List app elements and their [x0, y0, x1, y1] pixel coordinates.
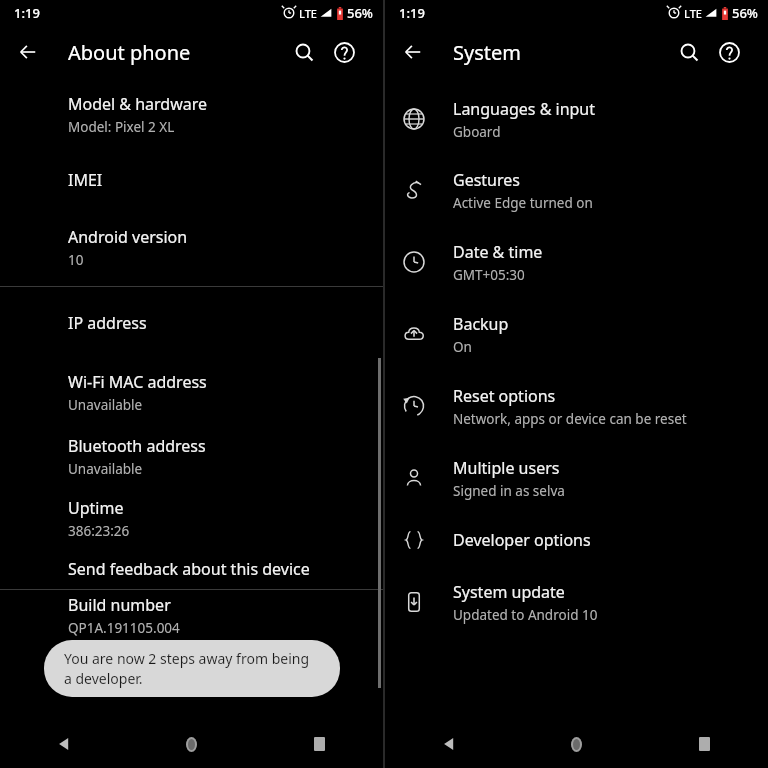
staticText: Uptime [68, 497, 124, 519]
button[interactable]: Help [712, 35, 746, 69]
staticText: You are now 2 steps away from being a de… [64, 649, 310, 688]
button[interactable]: Search [672, 35, 706, 69]
button[interactable]: Back [0, 720, 127, 768]
staticText: 1:19 [399, 4, 425, 22]
staticText: Active Edge turned on [453, 194, 593, 212]
button[interactable]: Gestures [385, 154, 768, 226]
staticText: IMEI [68, 169, 103, 191]
button[interactable]: Reset options [385, 370, 768, 442]
button[interactable]: IP address [0, 287, 383, 359]
button[interactable]: Home [127, 720, 255, 768]
staticText: Wi-Fi MAC address [68, 371, 207, 393]
staticText: Multiple users [453, 457, 560, 479]
button[interactable]: Multiple users [385, 442, 768, 514]
staticText: Gestures [453, 169, 520, 191]
staticText: 10 [68, 251, 84, 269]
staticText: Updated to Android 10 [453, 606, 598, 624]
button[interactable]: IMEI [0, 144, 383, 216]
button[interactable]: Search [287, 35, 321, 69]
staticText: GMT+05:30 [453, 266, 525, 284]
button[interactable]: Build number [0, 590, 383, 640]
staticText: 386:23:26 [68, 522, 130, 540]
staticText: Model & hardware [68, 93, 208, 115]
button[interactable]: Help [327, 35, 361, 69]
button[interactable]: Send feedback about this device [0, 549, 383, 589]
staticText: Model: Pixel 2 XL [68, 118, 175, 136]
staticText: Unavailable [68, 396, 143, 414]
button[interactable]: Developer options [385, 514, 768, 566]
staticText: Signed in as selva [453, 482, 565, 500]
staticText: LTE [684, 6, 702, 21]
button[interactable]: Android version [0, 216, 383, 278]
staticText: 1:19 [14, 4, 40, 22]
staticText: Gboard [453, 123, 501, 141]
staticText: Date & time [453, 241, 543, 263]
staticText: Backup [453, 313, 509, 335]
staticText: IP address [68, 312, 147, 334]
button[interactable]: Uptime [0, 487, 383, 549]
staticText: Build number [68, 594, 171, 616]
button[interactable]: Back [385, 720, 512, 768]
staticText: 56% [347, 4, 373, 22]
staticText: QP1A.191105.004 [68, 619, 180, 637]
staticText: Unavailable [68, 460, 143, 478]
staticText: Languages & input [453, 98, 596, 120]
button[interactable]: Back [393, 32, 433, 72]
staticText: Send feedback about this device [68, 558, 310, 580]
button[interactable]: Recents [640, 720, 768, 768]
button[interactable]: Model & hardware [0, 84, 383, 144]
button[interactable]: Bluetooth address [0, 425, 383, 487]
button[interactable]: Date & time [385, 226, 768, 298]
button[interactable]: Wi-Fi MAC address [0, 359, 383, 425]
staticText: On [453, 338, 472, 356]
button[interactable]: Backup [385, 298, 768, 370]
staticText: Developer options [453, 529, 591, 551]
button[interactable]: Home [512, 720, 640, 768]
staticText: Network, apps or device can be reset [453, 410, 687, 428]
button[interactable]: Recents [255, 720, 383, 768]
button[interactable]: System update [385, 566, 768, 638]
staticText: System update [453, 581, 565, 603]
staticText: LTE [299, 6, 317, 21]
button[interactable]: Back [8, 32, 48, 72]
button[interactable]: Languages & input [385, 84, 768, 154]
staticText: Reset options [453, 385, 556, 407]
staticText: System [453, 39, 521, 66]
staticText: About phone [68, 39, 191, 66]
staticText: 56% [732, 4, 758, 22]
staticText: Android version [68, 226, 188, 248]
staticText: Bluetooth address [68, 435, 206, 457]
